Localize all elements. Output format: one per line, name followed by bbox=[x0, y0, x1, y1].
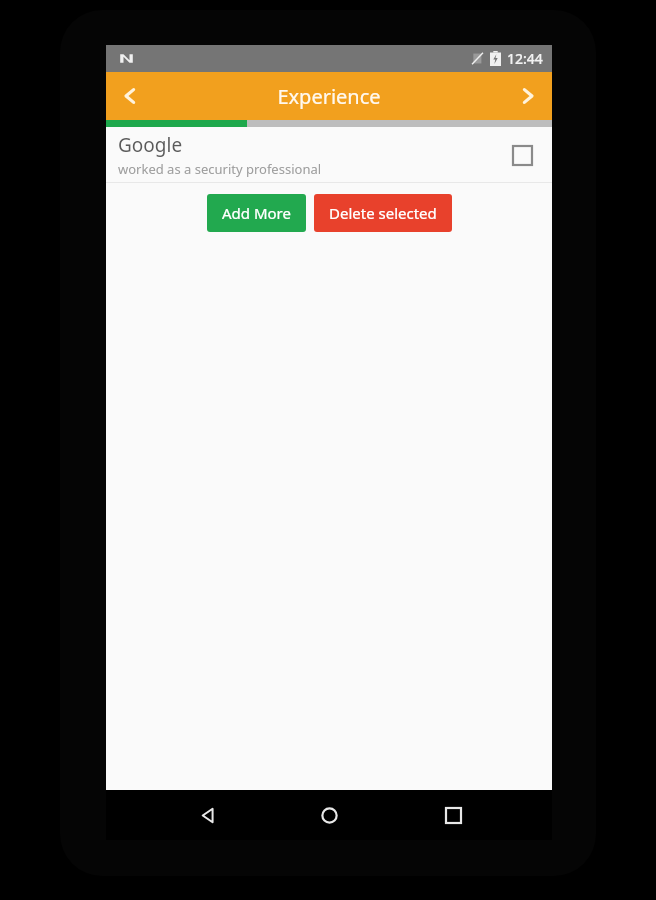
button[interactable]: Delete selected bbox=[314, 194, 452, 232]
staticText: Add More bbox=[222, 203, 291, 223]
staticText: 12:44 bbox=[507, 49, 543, 68]
button[interactable]: Previous bbox=[106, 72, 154, 120]
button[interactable]: Recent apps bbox=[429, 791, 477, 839]
button[interactable]: Select Google experience bbox=[506, 139, 538, 171]
button[interactable]: Back bbox=[184, 791, 232, 839]
staticText: Delete selected bbox=[329, 203, 437, 223]
staticText: Experience bbox=[277, 83, 381, 110]
button[interactable]: Add More bbox=[207, 194, 306, 232]
staticText: Google bbox=[118, 132, 183, 158]
button[interactable]: Home bbox=[305, 791, 353, 839]
button[interactable]: Google bbox=[106, 127, 552, 182]
staticText: worked as a security professional bbox=[118, 160, 322, 178]
button[interactable]: Next bbox=[504, 72, 552, 120]
